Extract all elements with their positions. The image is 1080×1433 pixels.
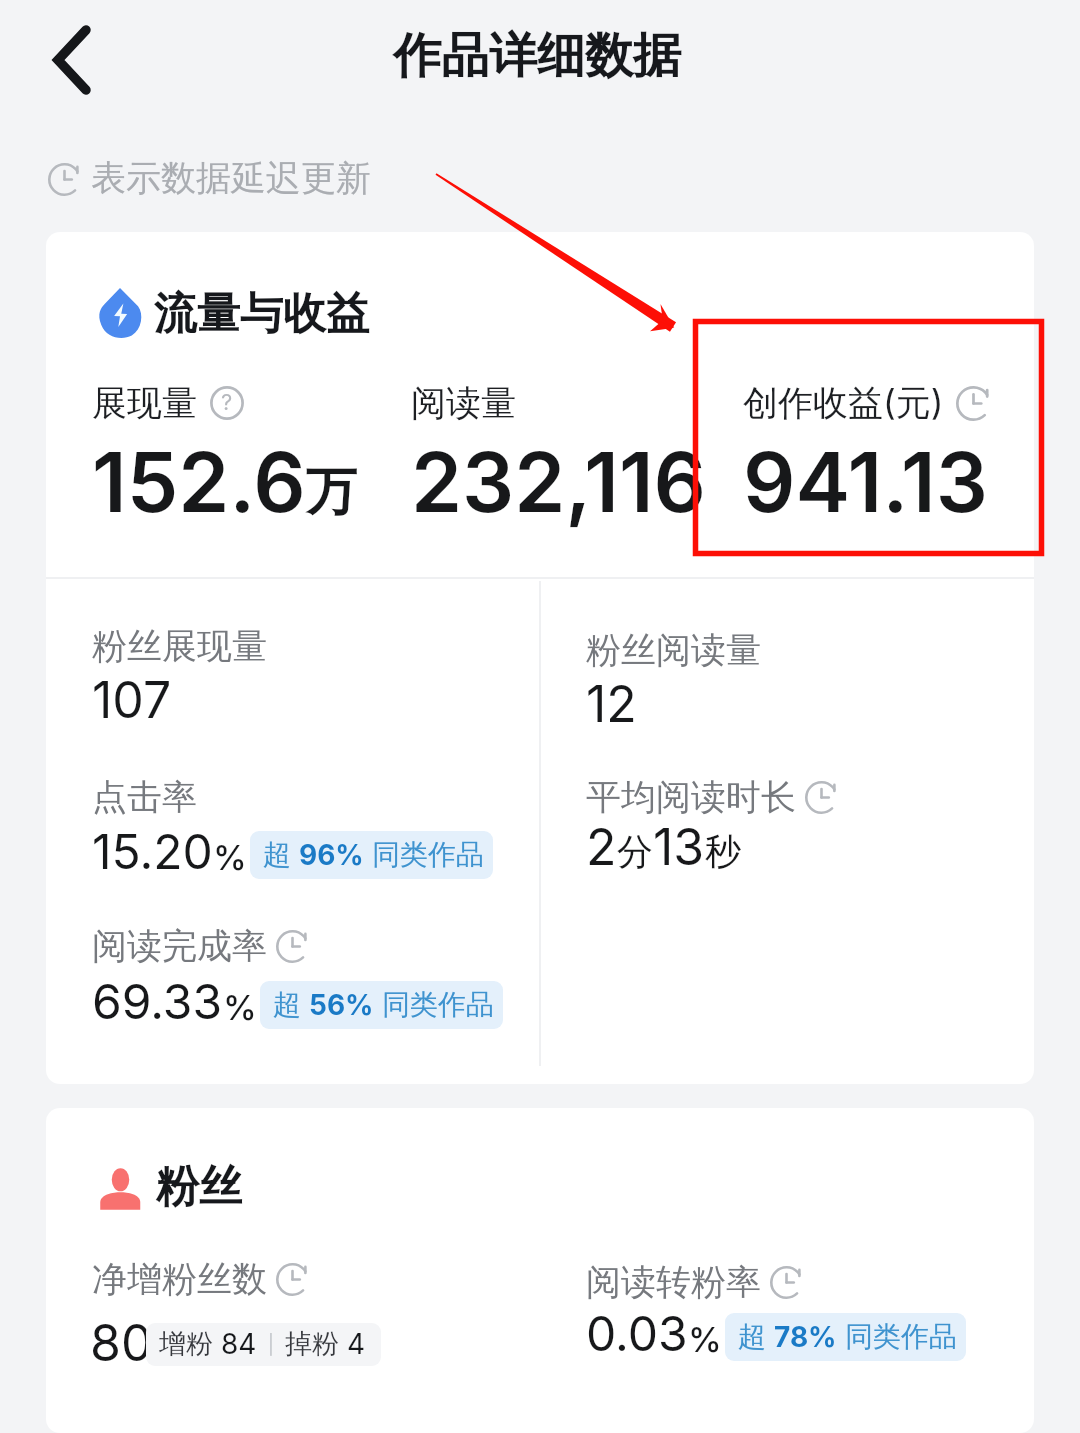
staticText: 超 bbox=[738, 1319, 774, 1354]
staticText: 80 bbox=[90, 1313, 153, 1373]
staticText: 78% bbox=[774, 1320, 837, 1354]
staticText: 净增粉丝数 bbox=[92, 1257, 267, 1301]
staticText: ? bbox=[221, 389, 233, 416]
staticText: 阅读量 bbox=[411, 381, 516, 425]
staticText: 107 bbox=[92, 670, 172, 730]
staticText: 69.33 bbox=[92, 972, 223, 1030]
staticText: % bbox=[688, 1319, 722, 1360]
staticText: 同类作品 bbox=[374, 987, 494, 1022]
staticText: 12 bbox=[586, 674, 637, 734]
staticText: 粉丝阅读量 bbox=[586, 628, 761, 672]
staticText: 点击率 bbox=[92, 775, 197, 819]
staticText: 同类作品 bbox=[364, 837, 484, 872]
staticText: 增粉 bbox=[159, 1327, 221, 1361]
staticText: 流量与收益 bbox=[154, 287, 369, 341]
staticText: 同类作品 bbox=[837, 1319, 957, 1354]
staticText: 作品详细数据 bbox=[393, 26, 681, 86]
staticText: % bbox=[223, 987, 257, 1028]
staticText: 阅读完成率 bbox=[92, 924, 267, 968]
staticText: 15.20 bbox=[92, 822, 213, 880]
staticText: 阅读转粉率 bbox=[586, 1260, 761, 1304]
staticText: 超 bbox=[273, 987, 309, 1022]
staticText: 超 bbox=[263, 837, 299, 872]
staticText: 掉粉 bbox=[285, 1327, 347, 1361]
staticText: 56% bbox=[309, 988, 374, 1022]
staticText: 万 bbox=[306, 460, 357, 524]
staticText: 展现量 bbox=[92, 381, 197, 425]
staticText: 96% bbox=[299, 838, 364, 872]
staticText: 4 bbox=[347, 1327, 366, 1361]
staticText: 平均阅读时长 bbox=[586, 775, 796, 819]
staticText: 2 bbox=[586, 817, 617, 877]
staticText: 0.03 bbox=[586, 1304, 688, 1362]
staticText: 84 bbox=[221, 1327, 257, 1361]
staticText: 粉丝展现量 bbox=[92, 624, 267, 668]
staticText: 13 bbox=[653, 817, 705, 877]
staticText: % bbox=[213, 837, 247, 878]
staticText: 152.6 bbox=[92, 433, 306, 532]
staticText: 秒 bbox=[705, 829, 741, 874]
staticText: 粉丝 bbox=[156, 1160, 242, 1214]
staticText: 创作收益(元) bbox=[743, 381, 944, 425]
staticText: 表示数据延迟更新 bbox=[91, 156, 371, 200]
staticText: 232,116 bbox=[411, 433, 707, 532]
staticText: 分 bbox=[617, 829, 653, 874]
button[interactable]: What is impressions bbox=[210, 386, 244, 420]
staticText: | bbox=[257, 1333, 285, 1356]
staticText: 941.13 bbox=[743, 433, 988, 532]
button[interactable]: Back bbox=[17, 15, 107, 105]
